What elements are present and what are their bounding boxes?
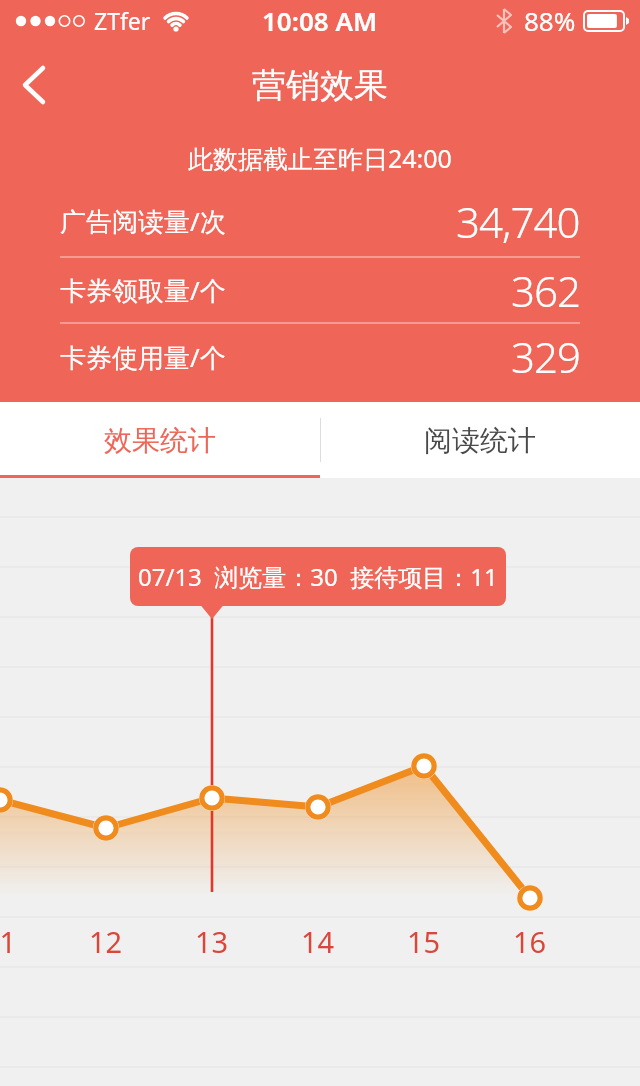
button[interactable]: 阅读统计 [320,402,640,478]
staticText: 11 [0,922,17,961]
staticText: 88% [524,3,576,38]
button[interactable]: 卡券领取量/个 [60,258,580,322]
staticText: 34,740 [456,193,580,250]
button[interactable]: 卡券使用量/个 [60,324,580,389]
staticText: 07/13 浏览量：30 接待项目：11 [138,560,498,593]
staticText: 阅读统计 [424,423,536,458]
staticText: 营销效果 [252,64,388,107]
staticText: ZTfer [94,5,151,36]
staticText: 10:08 AM [262,3,378,38]
staticText: 卡券领取量/个 [60,272,226,308]
staticText: 16 [513,922,547,961]
staticText: 329 [511,328,580,385]
staticText: 效果统计 [104,423,216,458]
staticText: 14 [301,922,335,961]
staticText: 此数据截止至昨日24:00 [188,141,452,175]
staticText: 广告阅读量/次 [60,203,226,239]
button[interactable]: 效果统计 [0,402,320,478]
staticText: 卡券使用量/个 [60,339,226,375]
staticText: 13 [195,922,229,961]
staticText: 12 [89,922,123,961]
button[interactable] [12,63,56,107]
button[interactable]: 07/13 浏览量：30 接待项目：11 [130,547,506,606]
staticText: 15 [407,922,441,961]
button[interactable]: 广告阅读量/次 [60,186,580,256]
staticText: 362 [511,262,580,319]
